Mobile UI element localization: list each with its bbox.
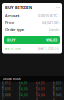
staticText: ›	[59, 27, 60, 32]
staticText: 64,001	[19, 93, 28, 100]
staticText: 0.0455	[53, 93, 62, 100]
button[interactable]: Amount	[2, 12, 62, 19]
staticText: Fee 0.10%	[5, 47, 20, 50]
staticText: 64,044	[36, 93, 45, 100]
staticText: 0.0118	[53, 87, 62, 95]
staticText: 0.0124	[2, 81, 11, 89]
staticText: 0.0087	[2, 93, 11, 100]
staticText: 0.0210	[53, 81, 62, 89]
staticText: 64,021.50	[42, 20, 58, 25]
staticText: ⋯	[56, 5, 60, 10]
button[interactable]: BUY	[4, 36, 60, 44]
staticText: Order type	[5, 27, 24, 32]
button[interactable]: More options	[56, 5, 60, 10]
staticText: Avail 1,204.55	[38, 47, 59, 50]
staticText: 64,010	[19, 81, 28, 89]
button[interactable]: Order type	[2, 26, 62, 33]
button[interactable]: Price	[2, 19, 62, 26]
staticText: 64,022	[36, 81, 45, 89]
staticText: 64,030	[36, 87, 45, 95]
staticText: 0.0351	[2, 87, 11, 95]
staticText: ORDER BOOK	[3, 77, 21, 81]
staticText: Amount	[5, 13, 19, 18]
staticText: BUY	[7, 37, 16, 43]
staticText: BUY BITCOIN	[5, 5, 32, 10]
staticText: 64,005	[19, 87, 28, 95]
staticText: $96.03	[46, 37, 57, 43]
staticText: ›	[59, 13, 60, 18]
staticText: Limit	[49, 27, 58, 32]
staticText: 0.0015 BTC	[38, 13, 58, 18]
staticText: Price	[5, 20, 14, 25]
staticText: ›	[59, 20, 60, 25]
